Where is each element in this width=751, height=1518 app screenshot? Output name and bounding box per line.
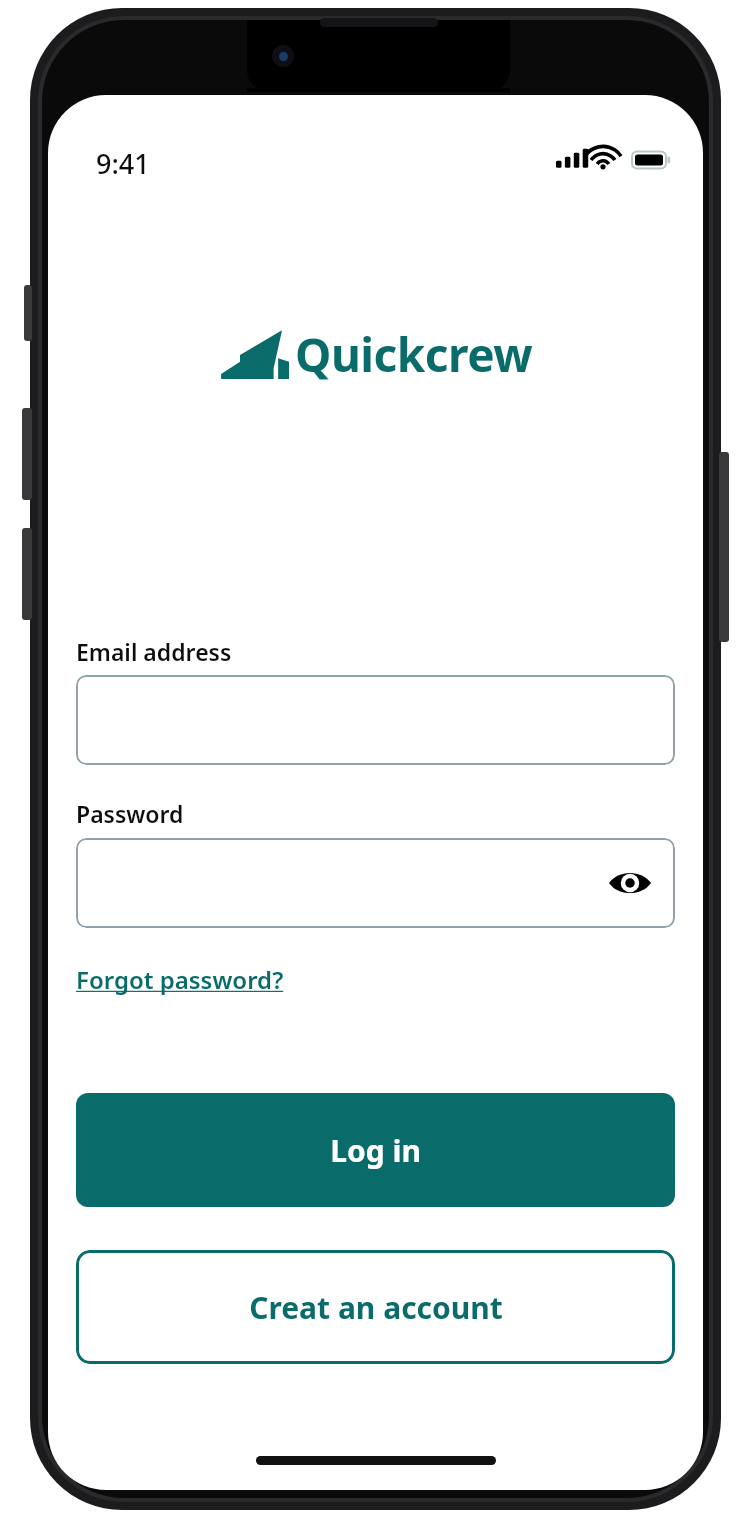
staticText: Creat an account bbox=[249, 1287, 503, 1328]
button[interactable]: Show password bbox=[607, 860, 653, 906]
button[interactable] bbox=[76, 675, 675, 765]
staticText: Quickcrew bbox=[295, 323, 533, 386]
staticText: 9:41 bbox=[96, 145, 150, 182]
staticText: Password bbox=[76, 798, 184, 829]
staticText: Email address bbox=[76, 636, 232, 667]
button[interactable]: Show password bbox=[76, 838, 675, 928]
button[interactable]: Log in bbox=[76, 1093, 675, 1207]
staticText: Log in bbox=[330, 1130, 421, 1171]
button[interactable]: Creat an account bbox=[76, 1250, 675, 1364]
button[interactable]: Forgot password? bbox=[76, 963, 284, 996]
staticText: Forgot password? bbox=[76, 963, 284, 996]
